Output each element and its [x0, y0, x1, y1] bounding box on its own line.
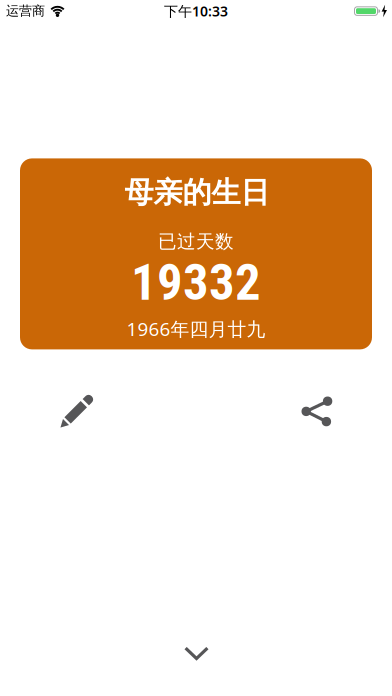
staticText: 1966年四月廿九: [126, 316, 265, 342]
staticText: 下午10:33: [164, 1, 228, 21]
staticText: 母亲的生日: [124, 174, 269, 211]
staticText: 运营商: [6, 3, 45, 19]
button[interactable]: Collapse: [176, 638, 216, 668]
button[interactable]: Edit: [51, 388, 99, 436]
staticText: 已过天数: [158, 230, 234, 253]
button[interactable]: Share: [294, 389, 338, 433]
staticText: 19332: [131, 253, 261, 312]
